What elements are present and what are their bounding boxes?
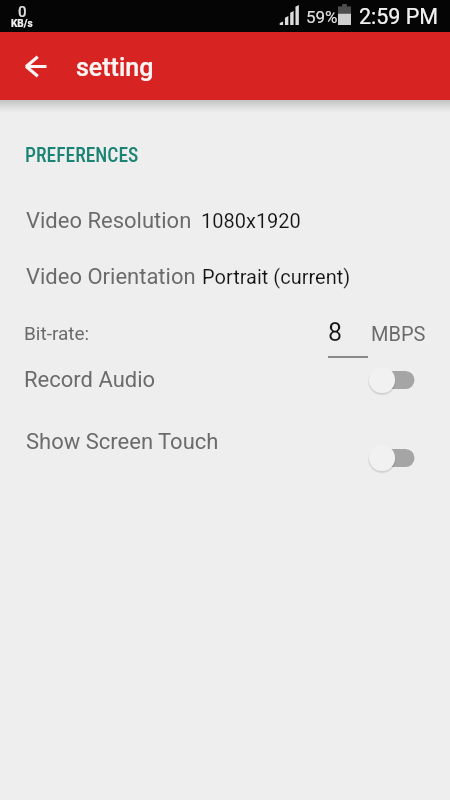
staticText: Record Audio	[24, 367, 156, 393]
staticText: setting	[76, 53, 154, 82]
button[interactable]: Show screen touch toggle	[369, 438, 423, 478]
button[interactable]: Record Audio	[0, 360, 450, 400]
staticText: PREFERENCES	[25, 144, 139, 167]
staticText: 1080x1920	[201, 209, 301, 232]
staticText: MBPS	[371, 322, 426, 345]
staticText: Portrait (current)	[202, 265, 351, 288]
button[interactable]: Video Orientation	[0, 255, 450, 298]
staticText: 0	[18, 3, 27, 21]
button[interactable]: Show Screen Touch	[0, 420, 450, 476]
button[interactable]: Video Resolution	[0, 199, 450, 242]
staticText: Video Resolution	[26, 208, 192, 234]
staticText: Video Orientation	[26, 264, 196, 290]
button[interactable]: Record Audio toggle	[369, 360, 423, 400]
staticText: 59%	[306, 7, 338, 27]
staticText: 2:59 PM	[359, 4, 439, 29]
button[interactable]: Back	[11, 42, 59, 90]
button[interactable]: Bit rate value	[328, 316, 368, 360]
staticText: Show Screen Touch	[26, 429, 219, 455]
staticText: Bit-rate:	[24, 322, 90, 344]
staticText: 8	[328, 318, 343, 347]
staticText: KB/s	[11, 18, 33, 30]
